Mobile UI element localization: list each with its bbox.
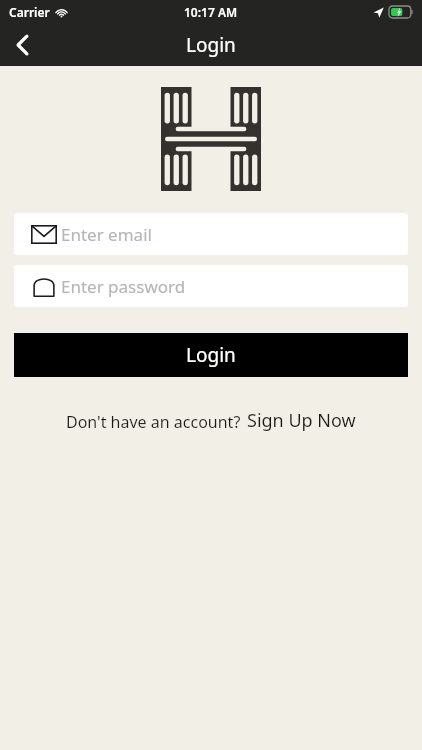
button[interactable]: Enter email <box>14 213 408 255</box>
staticText: Don't have an account? <box>66 411 241 433</box>
staticText: Login <box>186 32 236 58</box>
staticText: Enter password <box>61 275 186 298</box>
staticText: Login <box>186 342 236 368</box>
button[interactable]: Sign Up Now <box>247 408 356 433</box>
staticText: Sign Up Now <box>247 408 356 433</box>
button[interactable]: Login <box>14 333 408 377</box>
staticText: Carrier <box>9 4 50 20</box>
button[interactable]: Back <box>0 24 44 66</box>
staticText: Enter email <box>61 223 152 246</box>
staticText: 10:17 AM <box>184 4 238 20</box>
button[interactable]: Enter password <box>14 265 408 307</box>
